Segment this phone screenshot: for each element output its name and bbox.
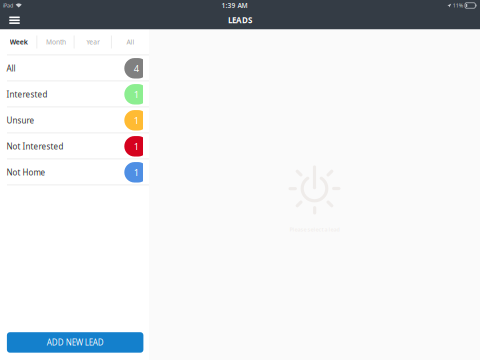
button[interactable]: All: [0, 55, 149, 81]
button[interactable]: Not Home: [0, 159, 149, 185]
staticText: 1: [134, 166, 139, 178]
staticText: Unsure: [6, 115, 34, 126]
button[interactable]: Menu: [4, 11, 25, 29]
staticText: 1:39 AM: [222, 1, 248, 10]
staticText: Interested: [6, 89, 47, 100]
staticText: Not Home: [6, 167, 45, 178]
staticText: iPad: [3, 2, 13, 9]
button[interactable]: Month: [37, 29, 74, 54]
staticText: LEADS: [228, 15, 252, 25]
button[interactable]: Week: [0, 29, 37, 54]
staticText: Year: [86, 38, 100, 46]
button[interactable]: Interested: [0, 81, 149, 107]
staticText: 4: [134, 62, 139, 74]
staticText: All: [126, 38, 134, 46]
staticText: 1: [134, 88, 139, 100]
button[interactable]: All: [112, 29, 149, 54]
staticText: Please select a lead: [289, 226, 339, 233]
staticText: Not Interested: [6, 141, 63, 152]
button[interactable]: Unsure: [0, 107, 149, 133]
staticText: 11%: [453, 2, 463, 9]
staticText: 1: [134, 140, 139, 152]
button[interactable]: ADD NEW LEAD: [7, 332, 143, 353]
staticText: All: [6, 63, 15, 74]
staticText: Month: [46, 38, 66, 46]
button[interactable]: Year: [74, 29, 112, 54]
staticText: 1: [134, 114, 139, 126]
staticText: ADD NEW LEAD: [47, 337, 104, 348]
staticText: Week: [10, 38, 28, 46]
button[interactable]: Not Interested: [0, 133, 149, 159]
